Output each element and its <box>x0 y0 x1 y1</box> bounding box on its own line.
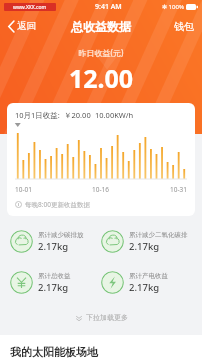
staticText: 我的太阳能板场地 <box>10 345 98 359</box>
staticText: 12.00 <box>0 61 202 95</box>
staticText: 2.17kg <box>38 240 69 253</box>
staticText: ✻ 100% <box>162 3 184 11</box>
button[interactable]: 钱包 <box>171 17 197 36</box>
button[interactable]: 下拉加载更多 <box>0 308 202 327</box>
staticText: 2.17kg <box>129 240 160 253</box>
staticText: 昨日收益(元) <box>0 47 202 58</box>
button[interactable]: 累计总收益 <box>10 269 101 296</box>
staticText: 10月1日收益: <box>15 110 60 120</box>
staticText: ￥20.00 <box>64 110 91 120</box>
staticText: 2.17kg <box>38 281 69 294</box>
staticText: 累计总收益 <box>38 272 71 280</box>
staticText: 10-01 <box>15 185 32 194</box>
button[interactable]: 累计产电收益 <box>101 269 192 296</box>
staticText: 9:41 AM <box>95 2 122 12</box>
staticText: 累计减少碳排放 <box>38 231 84 239</box>
button[interactable]: 返回 <box>5 17 39 35</box>
staticText: 下拉加载更多 <box>86 313 128 322</box>
staticText: 累计减少二氧化碳排放 <box>129 231 192 239</box>
staticText: 返回 <box>17 20 36 32</box>
staticText: 总收益数据 <box>71 19 131 34</box>
staticText: 10-16 <box>92 185 109 194</box>
staticText: 累计产电收益 <box>129 272 168 280</box>
staticText: 每晚8:00更新收益数据 <box>25 200 90 209</box>
button[interactable]: 累计减少二氧化碳排放 <box>101 228 192 255</box>
staticText: 2.17kg <box>129 281 160 294</box>
staticText: www.XXX.com <box>13 4 47 11</box>
button[interactable]: 10月1日收益: <box>7 103 195 216</box>
button[interactable]: 累计减少碳排放 <box>10 228 101 255</box>
staticText: 10-31 <box>170 185 187 194</box>
staticText: 10.00KW/h <box>95 110 134 120</box>
